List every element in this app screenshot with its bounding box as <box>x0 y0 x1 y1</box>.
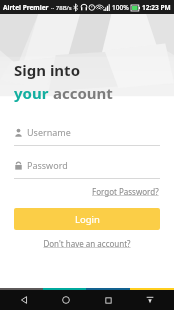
staticText: 12:23 PM <box>142 3 171 12</box>
staticText: Sign into <box>14 60 81 80</box>
staticText: ·· 78B/s <box>51 4 72 12</box>
staticText: Airtel Premier <box>3 3 49 12</box>
staticText: account <box>53 83 113 103</box>
button[interactable]: Hide keyboard <box>142 292 158 308</box>
button[interactable]: Don't have an account? <box>41 236 133 251</box>
button[interactable]: Home <box>58 292 74 308</box>
other: Username <box>14 128 23 137</box>
staticText: Forgot Password? <box>92 186 159 197</box>
button[interactable]: Username <box>14 125 160 139</box>
staticText: 100% <box>112 3 129 12</box>
button[interactable]: Login <box>14 208 160 230</box>
other: Password <box>14 161 23 170</box>
button[interactable]: Password <box>14 158 160 172</box>
button[interactable]: Recent apps <box>100 292 116 308</box>
button[interactable]: Forgot Password? <box>91 184 160 199</box>
staticText: Username <box>27 126 71 138</box>
staticText: Don't have an account? <box>43 238 131 249</box>
staticText: Login <box>75 213 100 226</box>
staticText: Password <box>27 159 68 171</box>
button[interactable]: Back <box>16 292 32 308</box>
staticText: your <box>14 83 53 103</box>
